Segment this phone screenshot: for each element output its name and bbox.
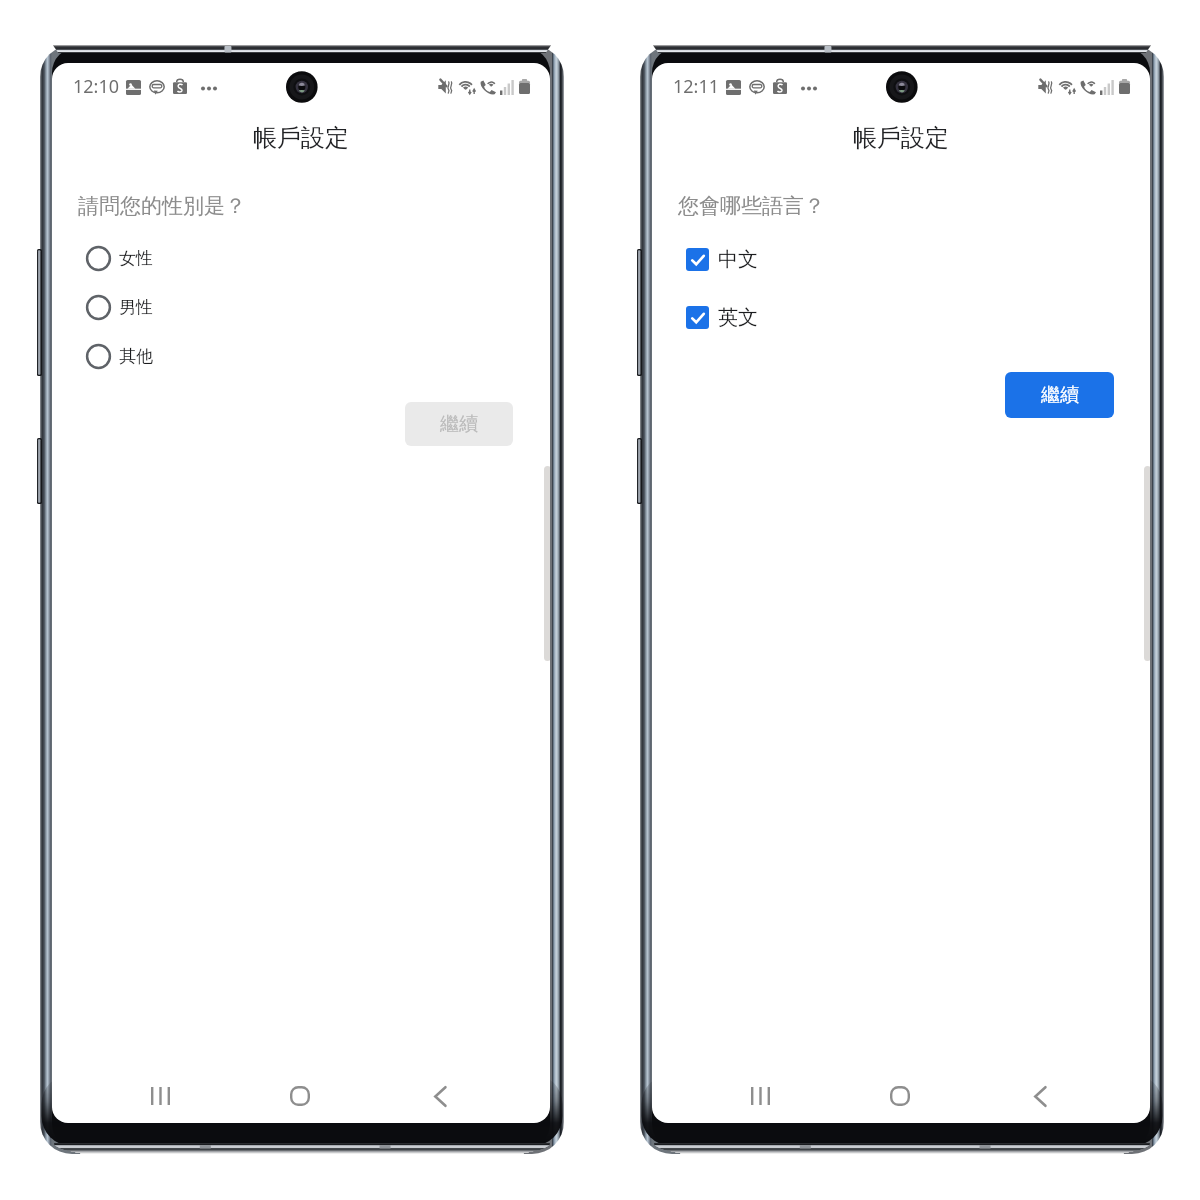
staticText: 請問您的性別是？ <box>78 193 246 219</box>
staticText: 帳戶設定 <box>253 123 349 153</box>
staticText: 繼續 <box>440 412 478 436</box>
button[interactable]: Back <box>410 1068 470 1123</box>
button[interactable]: 繼續 <box>1005 372 1114 418</box>
button[interactable]: 女性 <box>83 236 223 280</box>
staticText: 女性 <box>119 248 153 269</box>
staticText: 繼續 <box>1041 383 1079 407</box>
staticText: 12:11 <box>673 74 720 99</box>
button[interactable]: 英文 <box>686 295 826 339</box>
button[interactable]: Back <box>1010 1068 1070 1123</box>
button[interactable]: Recent apps <box>130 1068 190 1123</box>
button[interactable]: Home <box>270 1068 330 1123</box>
staticText: 英文 <box>718 305 758 330</box>
button[interactable]: Recent apps <box>730 1068 790 1123</box>
button[interactable]: Home <box>870 1068 930 1123</box>
staticText: 中文 <box>718 247 758 272</box>
staticText: 12:10 <box>73 74 120 99</box>
staticText: 帳戶設定 <box>853 123 949 153</box>
staticText: 其他 <box>119 346 153 367</box>
staticText: 男性 <box>119 297 153 318</box>
button[interactable]: 其他 <box>83 334 223 378</box>
staticText: 您會哪些語言？ <box>678 193 825 219</box>
button[interactable]: 中文 <box>686 237 826 281</box>
button[interactable]: 男性 <box>83 285 223 329</box>
button[interactable]: 繼續 <box>405 402 513 446</box>
